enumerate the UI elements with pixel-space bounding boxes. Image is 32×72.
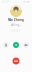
staticText: 00:00: [11, 29, 20, 33]
button[interactable]: End call: [12, 57, 19, 64]
staticText: Mia Zhang: [8, 18, 24, 22]
staticText: 9:41: [2, 0, 9, 4]
button[interactable]: Mute: [3, 42, 9, 48]
button[interactable]: Speaker: [13, 42, 19, 48]
staticText: calling…: [10, 23, 21, 27]
button[interactable]: Video: [23, 42, 29, 48]
